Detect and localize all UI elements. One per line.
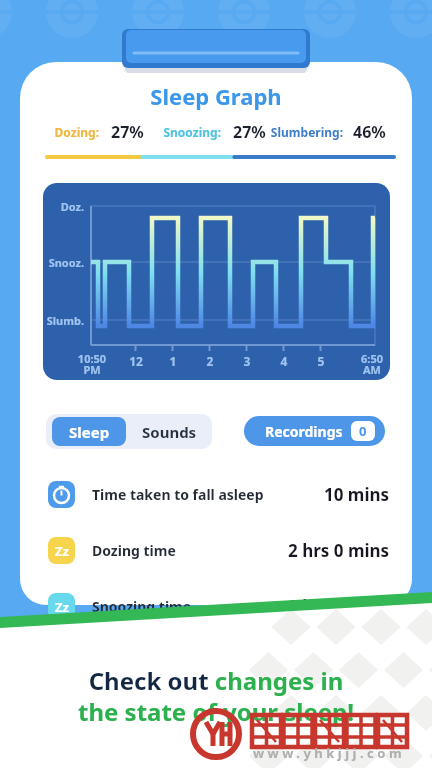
staticText: Doz. (40, 199, 84, 214)
staticText: Check out changes in (0, 664, 432, 697)
button[interactable]: Zz (48, 592, 390, 620)
staticText: Time taken to fall asleep (92, 485, 264, 504)
staticText: 10 mins (324, 483, 390, 506)
staticText: Sleep Graph (0, 81, 432, 111)
button[interactable]: Recordings (244, 416, 385, 446)
staticText: Zz (55, 542, 69, 560)
staticText: 10:50 PM (70, 351, 114, 378)
staticText: the state of your sleep! (0, 695, 432, 728)
staticText: Sounds (142, 422, 197, 442)
staticText: 12 (124, 353, 148, 369)
staticText: 5 (309, 353, 333, 369)
button[interactable]: Sleep (52, 417, 126, 446)
staticText: 1 (161, 353, 185, 369)
staticText: Sleep (69, 422, 110, 442)
staticText: 46% (353, 121, 386, 143)
staticText: 2 (198, 353, 222, 369)
button[interactable]: Sounds (130, 417, 208, 446)
staticText: Slumb. (40, 313, 84, 328)
staticText: Zz (55, 598, 69, 616)
staticText: 3 (235, 353, 259, 369)
staticText: Snoozing: (0, 124, 221, 140)
button[interactable]: Time taken to fall asleep (48, 480, 390, 508)
staticText: www.yhkjjj.com (194, 744, 432, 762)
staticText: Snooz. (40, 255, 84, 270)
staticText: 27% (111, 121, 144, 143)
staticText: Snoozing time (92, 597, 192, 616)
button[interactable]: Zz (48, 536, 390, 564)
staticText: 6:50 AM (350, 351, 394, 378)
staticText: 27% (233, 121, 266, 143)
staticText: Slumbering: (0, 124, 343, 140)
staticText: Dozing time (92, 541, 176, 560)
staticText: 4 (272, 353, 296, 369)
staticText: 2 hrs 0 mins (288, 539, 390, 562)
staticText: 0 (359, 422, 367, 440)
staticText: Recordings (265, 422, 343, 441)
staticText: Dozing: (0, 124, 99, 140)
staticText: 2 hrs 0 mins (288, 595, 390, 618)
